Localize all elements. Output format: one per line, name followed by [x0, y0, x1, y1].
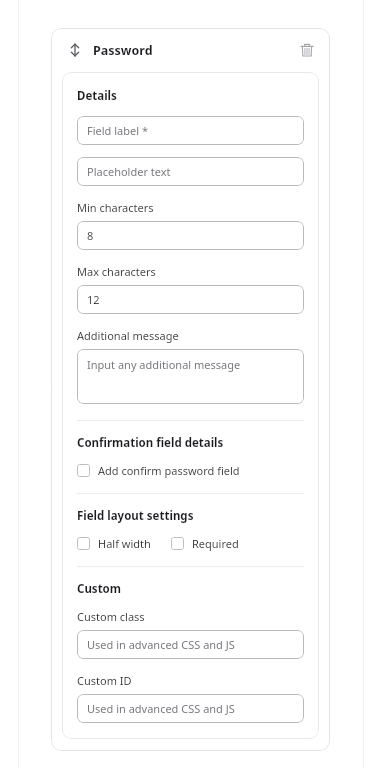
button[interactable]: Used in advanced CSS and JS — [77, 694, 304, 723]
staticText: Custom — [77, 581, 122, 597]
button[interactable]: Required — [171, 536, 239, 551]
staticText: Password — [93, 42, 153, 59]
staticText: Details — [77, 88, 117, 104]
staticText: Half width — [98, 536, 151, 551]
button[interactable]: 8 — [77, 221, 304, 250]
staticText: Custom ID — [77, 673, 132, 688]
staticText: Used in advanced CSS and JS — [87, 637, 235, 652]
staticText: Additional message — [77, 328, 179, 343]
staticText: Used in advanced CSS and JS — [87, 701, 235, 716]
staticText: Max characters — [77, 264, 156, 279]
staticText: 12 — [87, 292, 100, 307]
button[interactable]: Delete field — [296, 39, 318, 61]
staticText: Add confirm password field — [98, 463, 240, 478]
staticText: Field layout settings — [77, 508, 194, 524]
staticText: Field label * — [87, 123, 148, 138]
staticText: Min characters — [77, 200, 154, 215]
staticText: Required — [192, 536, 239, 551]
staticText: Input any additional message — [87, 357, 241, 372]
button[interactable]: Field label * — [77, 116, 304, 145]
staticText: Confirmation field details — [77, 435, 224, 451]
button[interactable]: Placeholder text — [77, 157, 304, 186]
button[interactable]: Half width — [77, 536, 151, 551]
button[interactable]: Used in advanced CSS and JS — [77, 630, 304, 659]
staticText: Custom class — [77, 609, 145, 624]
button[interactable]: 12 — [77, 285, 304, 314]
staticText: 8 — [87, 228, 94, 243]
button[interactable]: Input any additional message — [77, 349, 304, 404]
button[interactable]: Add confirm password field — [77, 463, 240, 478]
button[interactable]: Reorder field — [65, 40, 85, 60]
staticText: Placeholder text — [87, 164, 171, 179]
